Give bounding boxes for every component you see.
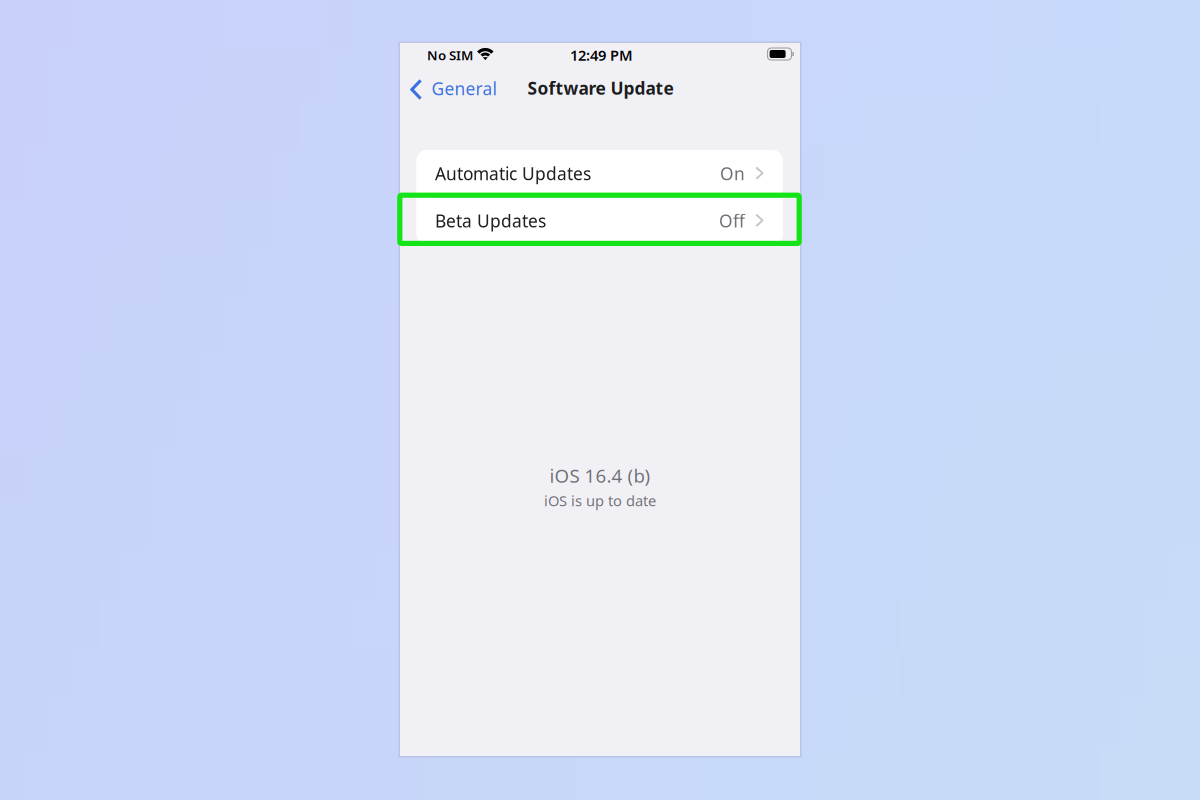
staticText: iOS 16.4 (b): [549, 463, 650, 488]
staticText: No SIM: [427, 46, 473, 64]
staticText: Off: [719, 209, 745, 232]
staticText: General: [431, 77, 496, 100]
staticText: Software Update: [527, 76, 673, 99]
button[interactable]: General: [400, 68, 506, 109]
staticText: Beta Updates: [435, 209, 546, 232]
button[interactable]: Beta Updates: [416, 197, 783, 244]
staticText: iOS is up to date: [544, 491, 656, 510]
staticText: 12:49 PM: [570, 45, 633, 65]
staticText: On: [720, 162, 745, 185]
staticText: Automatic Updates: [435, 162, 591, 185]
button[interactable]: Automatic Updates: [416, 150, 783, 197]
